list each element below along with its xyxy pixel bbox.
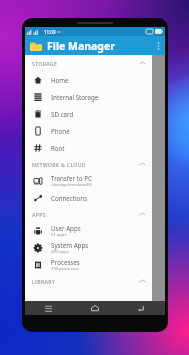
button[interactable]: Back [118, 301, 165, 315]
button[interactable]: LIBRARY [25, 273, 152, 289]
button[interactable]: System Apps [25, 239, 152, 256]
staticText: Transfer to PC [51, 174, 92, 182]
button[interactable]: APPS [25, 206, 152, 222]
staticText: NETWORK & CLOUD [32, 161, 86, 168]
button[interactable]: Processes [25, 256, 152, 273]
staticText: Internal Storage [51, 93, 99, 101]
staticText: 11:09 [44, 29, 56, 35]
staticText: 51 apps [51, 232, 67, 238]
button[interactable]: STORAGE [25, 55, 152, 71]
button[interactable]: More options [151, 36, 165, 55]
staticText: APPS [32, 211, 46, 218]
button[interactable]: Root [25, 139, 152, 156]
staticText: LIBRARY [32, 278, 56, 285]
staticText: User Apps [51, 224, 81, 232]
button[interactable]: Transfer to PC [25, 172, 152, 189]
staticText: System Apps [51, 241, 89, 249]
staticText: Processes [51, 258, 80, 266]
staticText: /storage/emulated/0 [51, 182, 92, 188]
button[interactable]: Phone [25, 122, 152, 139]
button[interactable]: Internal Storage [25, 88, 152, 105]
button[interactable]: User Apps [25, 222, 152, 239]
staticText: SD card [51, 110, 74, 118]
button[interactable]: Recents [25, 301, 71, 315]
staticText: Root [51, 144, 65, 152]
staticText: 333 processes [51, 266, 79, 272]
button[interactable]: NETWORK & CLOUD [25, 156, 152, 172]
staticText: Phone [51, 127, 70, 135]
staticText: Home [51, 76, 69, 84]
staticText: File Manager [47, 39, 115, 53]
staticText: 283 apps [51, 249, 69, 255]
staticText: STORAGE [32, 60, 58, 67]
button[interactable]: Home [71, 301, 118, 315]
staticText: Connections [51, 194, 88, 202]
button[interactable]: Home [25, 71, 152, 88]
button[interactable]: Connections [25, 189, 152, 206]
button[interactable]: SD card [25, 105, 152, 122]
